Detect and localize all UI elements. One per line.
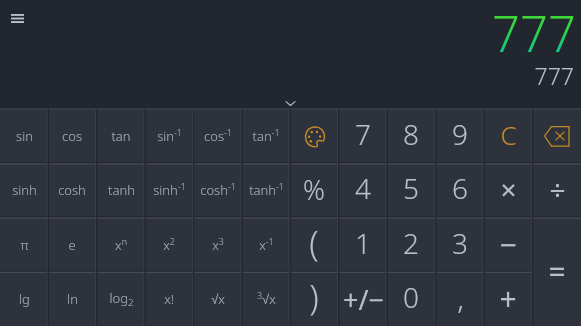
button[interactable]: cosh-1 <box>194 163 242 217</box>
staticText: cos-1 <box>204 127 232 145</box>
button[interactable]: = <box>533 218 581 326</box>
staticText: tan <box>111 127 131 145</box>
staticText: √x <box>211 290 225 308</box>
staticText: tan-1 <box>252 127 280 145</box>
button[interactable]: x! <box>145 272 193 326</box>
button[interactable]: tan <box>97 109 145 163</box>
staticText: cos <box>62 127 82 145</box>
staticText: sinh-1 <box>153 181 186 199</box>
staticText: x3 <box>212 236 224 254</box>
button[interactable]: Themes <box>290 109 338 163</box>
button[interactable]: x-1 <box>242 218 290 272</box>
staticText: 6 <box>452 169 468 207</box>
staticText: 7 <box>355 115 371 153</box>
staticText: sin-1 <box>157 127 182 145</box>
staticText: 777 <box>534 60 574 91</box>
button[interactable]: ÷ <box>533 163 581 217</box>
button[interactable]: +/− <box>339 272 387 326</box>
button[interactable]: 3 <box>436 218 484 272</box>
staticText: 1 <box>355 224 371 262</box>
staticText: cosh-1 <box>200 181 236 199</box>
staticText: x2 <box>163 236 175 254</box>
staticText: tanh-1 <box>249 181 284 199</box>
staticText: tanh <box>108 181 135 199</box>
staticText: + <box>499 278 517 319</box>
staticText: , <box>457 277 464 318</box>
staticText: 2 <box>403 224 419 262</box>
button[interactable]: e <box>48 218 96 272</box>
staticText: xn <box>115 236 127 254</box>
button[interactable]: tanh-1 <box>242 163 290 217</box>
button[interactable]: sin-1 <box>145 109 193 163</box>
staticText: = <box>548 251 566 292</box>
button[interactable]: ) <box>290 272 338 326</box>
button[interactable]: Menu <box>0 0 34 36</box>
staticText: 3√x <box>257 290 276 308</box>
button[interactable]: x3 <box>194 218 242 272</box>
staticText: 4 <box>355 169 371 207</box>
staticText: 8 <box>403 115 419 153</box>
button[interactable]: 7 <box>339 109 387 163</box>
button[interactable]: sin <box>0 109 48 163</box>
button[interactable]: cos-1 <box>194 109 242 163</box>
staticText: log2 <box>109 289 134 309</box>
staticText: cosh <box>58 181 86 199</box>
button[interactable]: ( <box>290 218 338 272</box>
staticText: x-1 <box>259 236 274 254</box>
button[interactable]: 4 <box>339 163 387 217</box>
staticText: ÷ <box>549 170 566 208</box>
button[interactable]: 6 <box>436 163 484 217</box>
staticText: 777 <box>492 0 576 67</box>
button[interactable]: xn <box>97 218 145 272</box>
staticText: e <box>68 236 76 254</box>
staticText: % <box>303 171 325 208</box>
staticText: 3 <box>452 224 468 262</box>
button[interactable]: tan-1 <box>242 109 290 163</box>
staticText: lg <box>19 290 30 308</box>
button[interactable]: 2 <box>387 218 435 272</box>
button[interactable]: % <box>290 163 338 217</box>
button[interactable]: sinh <box>0 163 48 217</box>
staticText: ln <box>67 290 78 308</box>
button[interactable]: 0 <box>387 272 435 326</box>
button[interactable]: − <box>484 218 532 272</box>
button[interactable]: ln <box>48 272 96 326</box>
staticText: − <box>499 224 517 265</box>
button[interactable]: , <box>436 272 484 326</box>
button[interactable]: √x <box>194 272 242 326</box>
button[interactable]: π <box>0 218 48 272</box>
button[interactable]: × <box>484 163 532 217</box>
staticText: x! <box>164 290 174 308</box>
button[interactable]: x2 <box>145 218 193 272</box>
staticText: sin <box>16 127 33 145</box>
button[interactable]: C <box>484 109 532 163</box>
staticText: sinh <box>12 181 37 199</box>
button[interactable]: 5 <box>387 163 435 217</box>
button[interactable]: sinh-1 <box>145 163 193 217</box>
button[interactable]: 9 <box>436 109 484 163</box>
staticText: π <box>20 236 29 254</box>
staticText: ( <box>309 220 319 266</box>
staticText: 9 <box>452 115 468 153</box>
button[interactable]: Backspace <box>533 109 581 163</box>
staticText: ) <box>309 274 319 320</box>
button[interactable]: 3√x <box>242 272 290 326</box>
staticText: C <box>500 117 517 152</box>
button[interactable]: + <box>484 272 532 326</box>
button[interactable]: lg <box>0 272 48 326</box>
button[interactable]: log2 <box>97 272 145 326</box>
staticText: × <box>500 170 517 208</box>
button[interactable]: cos <box>48 109 96 163</box>
button[interactable]: cosh <box>48 163 96 217</box>
button[interactable]: Expand <box>266 87 314 109</box>
button[interactable]: 8 <box>387 109 435 163</box>
staticText: 5 <box>403 169 419 207</box>
button[interactable]: tanh <box>97 163 145 217</box>
staticText: +/− <box>343 281 384 318</box>
staticText: 0 <box>403 278 419 316</box>
button[interactable]: 1 <box>339 218 387 272</box>
